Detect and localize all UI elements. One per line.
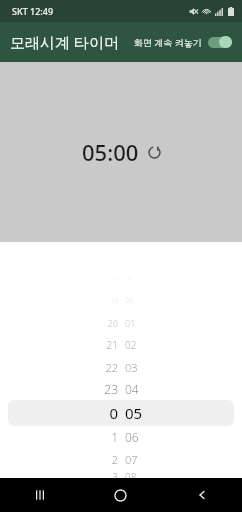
staticText: 19 (110, 296, 118, 306)
staticText: SKT 12:49 (12, 5, 54, 17)
staticText: 04 (125, 381, 139, 397)
staticText: 05:00 (82, 137, 139, 167)
staticText: 23 (104, 381, 118, 397)
button[interactable]: 3 (0, 470, 242, 478)
staticText: 21 (106, 338, 118, 352)
button[interactable]: Reset timer (147, 145, 161, 159)
staticText: 02 (125, 338, 137, 352)
button[interactable]: 2 (0, 448, 242, 470)
button[interactable]: 0 (8, 400, 234, 426)
button[interactable]: 1 (0, 426, 242, 448)
staticText: 2 (111, 452, 118, 467)
button[interactable]: 23 (0, 378, 242, 400)
staticText: 08 (125, 470, 137, 478)
staticText: 00 (125, 296, 133, 306)
staticText: 07 (125, 452, 138, 467)
staticText: 3 (112, 470, 118, 478)
button[interactable]: Recent apps (0, 478, 80, 512)
staticText: 화면 계속 켜놓기 (134, 36, 202, 48)
button[interactable]: 화면 계속 켜놓기 (132, 32, 234, 52)
staticText: 20 (107, 317, 118, 329)
button[interactable]: Home (80, 478, 161, 512)
staticText: 03 (125, 360, 138, 375)
button[interactable]: 22 (0, 356, 242, 378)
staticText: 06 (125, 429, 139, 445)
staticText: 05 (125, 403, 143, 423)
staticText: 0 (109, 403, 118, 423)
staticText: 01 (125, 317, 136, 329)
staticText: 1 (111, 429, 118, 445)
staticText: 모래시계 타이머 (10, 32, 119, 52)
button[interactable]: 21 (0, 334, 242, 356)
staticText: 22 (105, 360, 118, 375)
button[interactable]: Back (161, 478, 242, 512)
